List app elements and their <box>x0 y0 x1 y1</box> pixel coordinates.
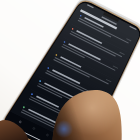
other: Hand holding phone showing a dark app sc… <box>0 0 140 140</box>
